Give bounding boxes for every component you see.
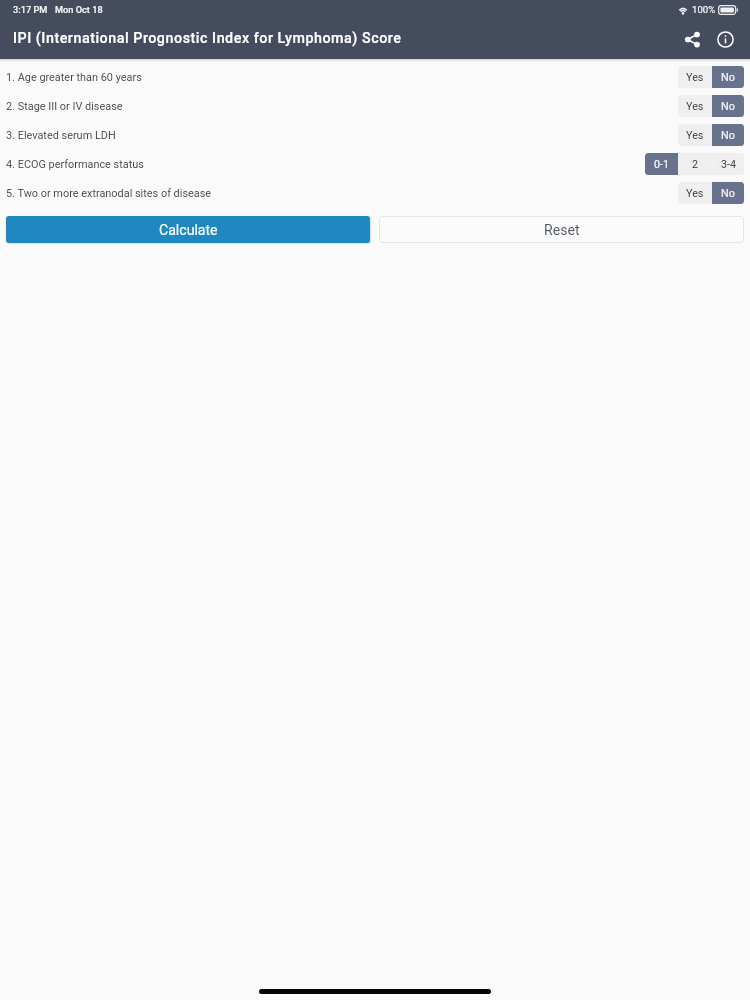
button[interactable]: 2: [678, 153, 713, 175]
button[interactable]: Share: [678, 25, 706, 53]
staticText: 2: [692, 158, 699, 171]
button[interactable]: 5. Two or more extranodal sites of disea…: [0, 178, 750, 207]
button[interactable]: No: [712, 95, 744, 117]
button[interactable]: Yes: [678, 95, 712, 117]
staticText: 4. ECOG performance status: [6, 158, 144, 171]
staticText: 2. Stage III or IV disease: [6, 100, 123, 113]
button[interactable]: Yes: [678, 182, 712, 204]
button[interactable]: Yes: [678, 66, 712, 88]
staticText: Mon Oct 18: [55, 4, 103, 15]
staticText: Yes: [686, 100, 704, 113]
staticText: 100%: [692, 4, 716, 15]
staticText: No: [721, 71, 735, 84]
staticText: No: [721, 100, 735, 113]
staticText: 5. Two or more extranodal sites of disea…: [6, 187, 212, 200]
button[interactable]: 3. Elevated serum LDH: [0, 120, 750, 149]
staticText: Calculate: [159, 222, 218, 239]
button[interactable]: No: [712, 124, 744, 146]
staticText: Yes: [686, 129, 704, 142]
staticText: Yes: [686, 187, 704, 200]
staticText: No: [721, 187, 735, 200]
button[interactable]: No: [712, 66, 744, 88]
staticText: Yes: [686, 71, 704, 84]
button[interactable]: Reset: [379, 216, 744, 243]
button[interactable]: Yes: [678, 124, 712, 146]
button[interactable]: Calculate: [6, 216, 370, 243]
staticText: 3:17 PM: [13, 4, 48, 15]
staticText: Reset: [544, 222, 580, 239]
button[interactable]: No: [712, 182, 744, 204]
button[interactable]: 3-4: [713, 153, 744, 175]
staticText: 3-4: [721, 158, 737, 171]
staticText: IPI (International Prognostic Index for …: [13, 30, 402, 47]
button[interactable]: 1. Age greater than 60 years: [0, 62, 750, 91]
button[interactable]: Info: [711, 25, 739, 53]
button[interactable]: 2. Stage III or IV disease: [0, 91, 750, 120]
staticText: 3. Elevated serum LDH: [6, 129, 116, 142]
staticText: No: [721, 129, 735, 142]
button[interactable]: 4. ECOG performance status: [0, 149, 750, 178]
staticText: 1. Age greater than 60 years: [6, 71, 142, 84]
staticText: 0-1: [654, 158, 670, 171]
button[interactable]: 0-1: [645, 153, 678, 175]
